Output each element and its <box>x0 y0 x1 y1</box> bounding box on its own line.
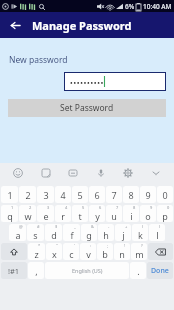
button[interactable]: ) <box>149 224 165 241</box>
staticText: ( <box>142 224 144 229</box>
button[interactable]: 4 <box>55 205 71 222</box>
button[interactable]: ! <box>114 243 130 260</box>
staticText: z <box>34 248 39 260</box>
button[interactable]: 9 <box>140 205 156 222</box>
button[interactable] <box>64 72 166 91</box>
staticText: Set Password <box>60 102 114 114</box>
staticText: 6 <box>94 189 100 201</box>
staticText: b <box>102 248 108 260</box>
staticText: o <box>145 210 151 222</box>
button[interactable]: 3 <box>37 186 54 203</box>
button[interactable]: Stickers <box>37 164 55 182</box>
button[interactable]: Settings <box>119 164 137 182</box>
staticText: u <box>111 210 117 222</box>
button[interactable]: 5 <box>72 205 88 222</box>
staticText: ' <box>74 243 75 248</box>
staticText: 7 <box>116 205 119 210</box>
button[interactable]: Collapse keyboard <box>147 164 165 182</box>
staticText: k <box>138 229 143 241</box>
staticText: 4 <box>65 205 68 210</box>
staticText: p <box>162 210 168 222</box>
button[interactable]: ( <box>132 224 148 241</box>
staticText: r <box>61 210 65 222</box>
button[interactable]: $ <box>45 224 62 241</box>
staticText: ; <box>107 243 109 248</box>
staticText: @ <box>19 224 23 229</box>
button[interactable]: Space <box>45 262 129 279</box>
button[interactable]: 9 <box>140 186 156 203</box>
button[interactable]: Back <box>4 14 26 36</box>
staticText: 6% <box>125 2 135 11</box>
button[interactable]: 1 <box>1 186 18 203</box>
staticText: s <box>33 229 38 241</box>
staticText: c <box>69 248 74 260</box>
button[interactable]: * <box>28 243 45 260</box>
button[interactable]: @ <box>9 224 26 241</box>
staticText: h <box>103 229 109 241</box>
staticText: g <box>86 229 92 241</box>
staticText: d <box>51 229 57 241</box>
button[interactable]: Done <box>147 262 173 279</box>
button[interactable]: 2 <box>19 205 36 222</box>
button[interactable]: !#1 <box>1 262 27 279</box>
button[interactable]: # <box>27 224 44 241</box>
button[interactable]: " <box>46 243 62 260</box>
button[interactable]: ' <box>63 243 79 260</box>
button[interactable]: _ <box>63 224 80 241</box>
button[interactable]: - <box>98 224 114 241</box>
staticText: 3 <box>47 205 50 210</box>
staticText: t <box>78 210 82 222</box>
staticText: 6 <box>99 205 102 210</box>
button[interactable]: 6 <box>89 205 105 222</box>
staticText: # <box>37 224 40 229</box>
button[interactable]: GIF <box>64 164 82 182</box>
button[interactable]: ? <box>131 243 147 260</box>
button[interactable]: 0 <box>157 205 173 222</box>
staticText: 7 <box>111 189 117 201</box>
button[interactable]: Set Password <box>8 99 166 117</box>
button[interactable]: : <box>80 243 96 260</box>
button[interactable]: 8 <box>123 205 139 222</box>
staticText: f <box>70 229 74 241</box>
button[interactable]: Backspace <box>148 243 173 260</box>
button[interactable]: 6 <box>89 186 105 203</box>
staticText: w <box>24 210 32 222</box>
staticText: v <box>86 248 91 260</box>
button[interactable]: 3 <box>37 205 54 222</box>
staticText: m <box>135 248 144 260</box>
button[interactable]: 7 <box>106 186 122 203</box>
button[interactable]: Emoji <box>9 164 27 182</box>
button[interactable]: 7 <box>106 205 122 222</box>
button[interactable]: 8 <box>123 186 139 203</box>
staticText: 8 <box>128 189 134 201</box>
button[interactable]: 1 <box>1 205 18 222</box>
staticText: " <box>56 243 58 248</box>
button[interactable]: . <box>130 262 146 279</box>
staticText: 2 <box>25 189 31 201</box>
staticText: 5 <box>77 189 83 201</box>
button[interactable]: Voice input <box>92 164 110 182</box>
staticText: 9 <box>150 205 153 210</box>
staticText: 4 <box>60 189 66 201</box>
button[interactable]: 5 <box>72 186 88 203</box>
staticText: 0 <box>167 205 170 210</box>
button[interactable]: + <box>115 224 131 241</box>
staticText: ? <box>141 243 143 248</box>
button[interactable]: & <box>81 224 97 241</box>
button[interactable]: , <box>28 262 44 279</box>
button[interactable]: Shift <box>1 243 27 260</box>
staticText: & <box>91 224 94 229</box>
staticText: x <box>52 248 57 260</box>
staticText: . <box>137 265 140 277</box>
button[interactable]: 0 <box>157 186 173 203</box>
staticText: q <box>7 210 13 222</box>
button[interactable]: 2 <box>19 186 36 203</box>
button[interactable]: 4 <box>55 186 71 203</box>
staticText: !#1 <box>8 266 20 276</box>
staticText: * <box>38 243 41 248</box>
staticText: 9 <box>145 189 151 201</box>
staticText: : <box>90 243 92 248</box>
staticText: e <box>43 210 49 222</box>
staticText: ) <box>159 224 161 229</box>
button[interactable]: ; <box>97 243 113 260</box>
